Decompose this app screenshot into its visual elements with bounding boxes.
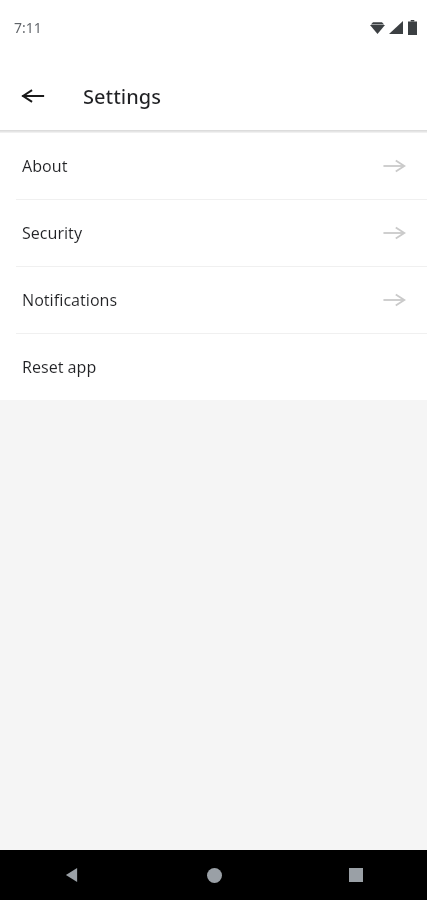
- button[interactable]: About: [0, 133, 427, 199]
- button[interactable]: Home: [143, 850, 285, 900]
- staticText: About: [22, 155, 68, 177]
- button[interactable]: Recent apps: [285, 850, 427, 900]
- staticText: Reset app: [22, 356, 97, 378]
- staticText: Security: [22, 222, 83, 244]
- staticText: Settings: [83, 83, 161, 110]
- staticText: 7:11: [14, 18, 42, 37]
- button[interactable]: Security: [0, 200, 427, 266]
- button[interactable]: Notifications: [0, 267, 427, 333]
- button[interactable]: Back: [0, 850, 143, 900]
- staticText: Notifications: [22, 289, 118, 311]
- button[interactable]: Reset app: [0, 334, 427, 400]
- button[interactable]: Back: [9, 72, 57, 120]
